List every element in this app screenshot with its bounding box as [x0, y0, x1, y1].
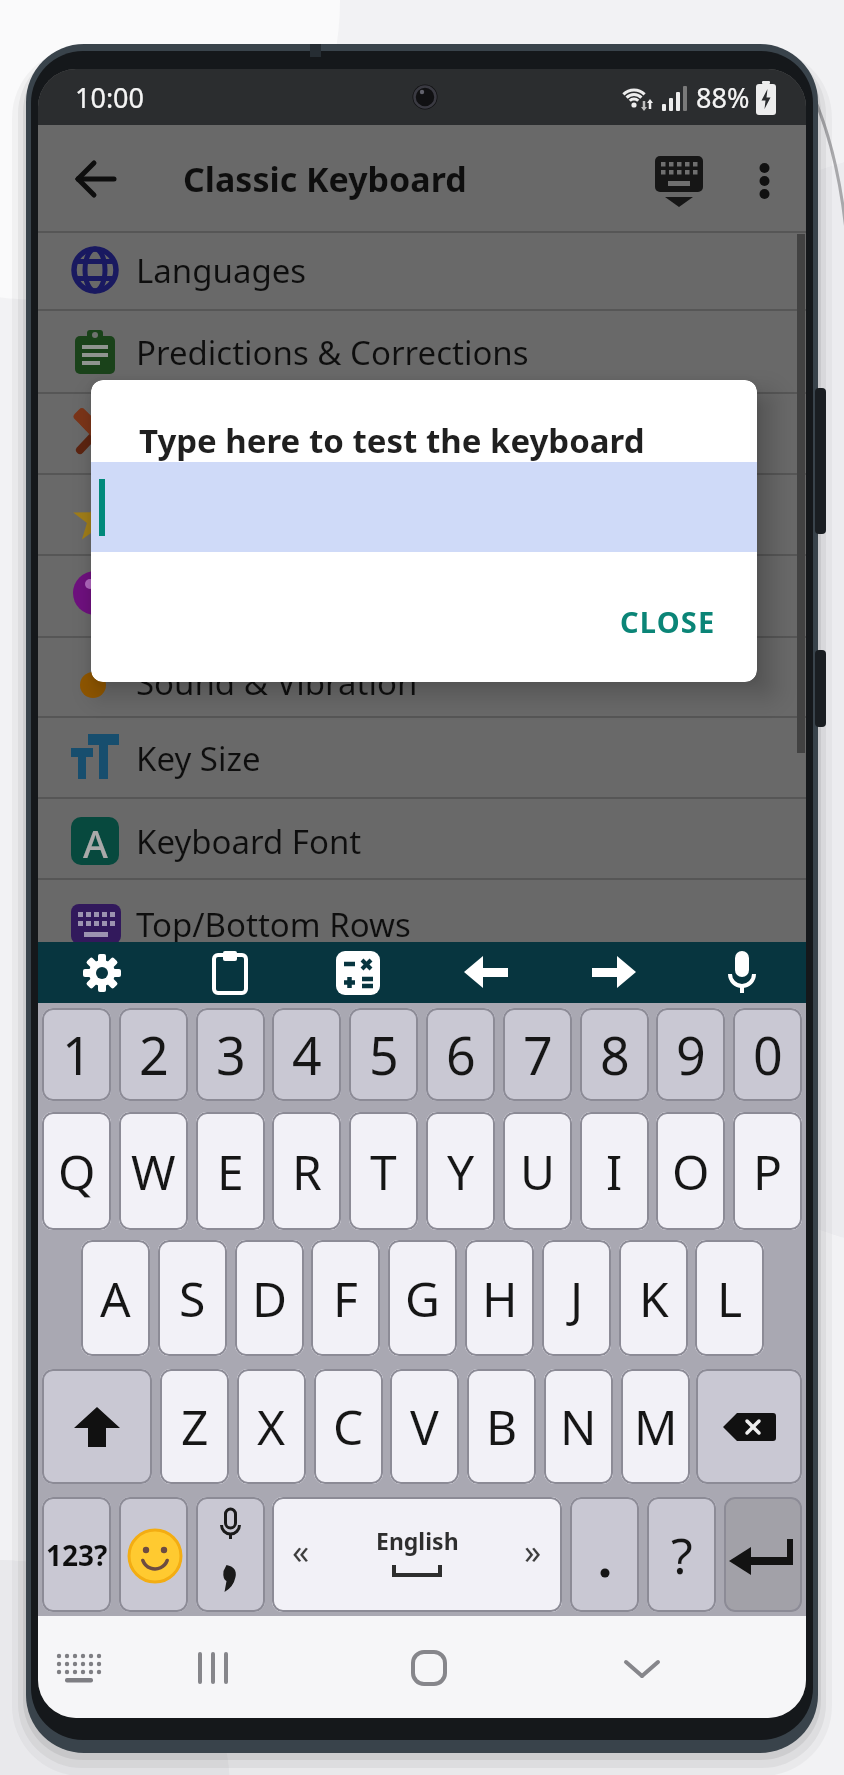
- staticText: K: [639, 1266, 669, 1331]
- staticText: 3: [216, 1019, 246, 1090]
- button[interactable]: [185, 1640, 241, 1696]
- button[interactable]: C: [314, 1369, 383, 1484]
- button[interactable]: [196, 1497, 265, 1612]
- button[interactable]: V: [390, 1369, 459, 1484]
- staticText: V: [410, 1394, 439, 1459]
- button[interactable]: [724, 1497, 802, 1612]
- button[interactable]: [401, 1640, 457, 1696]
- button[interactable]: [38, 942, 166, 1003]
- staticText: «: [292, 1528, 310, 1574]
- button[interactable]: B: [467, 1369, 536, 1484]
- button[interactable]: [614, 1640, 670, 1696]
- staticText: P: [753, 1139, 783, 1204]
- button[interactable]: 0: [733, 1008, 802, 1101]
- button[interactable]: CLOSE: [593, 594, 743, 648]
- button[interactable]: Top/Bottom Rows: [38, 885, 806, 963]
- button[interactable]: 7: [503, 1008, 572, 1101]
- button[interactable]: [294, 942, 422, 1003]
- button[interactable]: [68, 151, 124, 207]
- staticText: M: [634, 1394, 678, 1459]
- button[interactable]: [42, 1369, 152, 1484]
- button[interactable]: 123?: [42, 1497, 111, 1612]
- staticText: I: [606, 1139, 623, 1204]
- staticText: Sound & Vibration: [136, 660, 418, 705]
- button[interactable]: [696, 1369, 802, 1484]
- staticText: 1: [62, 1019, 92, 1090]
- staticText: C: [333, 1394, 364, 1459]
- button[interactable]: [570, 1497, 639, 1612]
- button[interactable]: [38, 394, 806, 472]
- button[interactable]: F: [311, 1240, 380, 1356]
- button[interactable]: Q: [42, 1112, 111, 1230]
- button[interactable]: [38, 554, 806, 632]
- button[interactable]: [738, 141, 790, 221]
- staticText: 0: [753, 1019, 783, 1090]
- staticText: 8: [600, 1019, 630, 1090]
- button[interactable]: L: [695, 1240, 764, 1356]
- button[interactable]: S: [158, 1240, 227, 1356]
- staticText: Type here to test the keyboard: [139, 418, 645, 463]
- button[interactable]: Predictions & Corrections: [38, 313, 806, 391]
- button[interactable]: [51, 1640, 107, 1696]
- button[interactable]: A: [38, 802, 806, 880]
- staticText: N: [560, 1394, 597, 1459]
- button[interactable]: O: [656, 1112, 725, 1230]
- button[interactable]: Languages: [38, 231, 806, 309]
- button[interactable]: Sound & Vibration: [38, 643, 806, 721]
- button[interactable]: [166, 942, 294, 1003]
- button[interactable]: ?: [647, 1497, 716, 1612]
- staticText: Y: [447, 1139, 475, 1204]
- staticText: Z: [181, 1394, 209, 1459]
- button[interactable]: T: [349, 1112, 418, 1230]
- button[interactable]: K: [619, 1240, 688, 1356]
- staticText: T: [370, 1139, 397, 1204]
- button[interactable]: [38, 479, 806, 557]
- staticText: 7: [523, 1019, 553, 1090]
- button[interactable]: X: [237, 1369, 306, 1484]
- button[interactable]: Y: [426, 1112, 495, 1230]
- button[interactable]: R: [272, 1112, 341, 1230]
- button[interactable]: A: [81, 1240, 150, 1356]
- staticText: G: [405, 1266, 440, 1331]
- button[interactable]: E: [196, 1112, 265, 1230]
- staticText: F: [333, 1266, 358, 1331]
- button[interactable]: Z: [160, 1369, 229, 1484]
- staticText: English: [376, 1525, 459, 1556]
- staticText: 88%: [696, 79, 750, 116]
- button[interactable]: 6: [426, 1008, 495, 1101]
- button[interactable]: [91, 462, 757, 552]
- button[interactable]: 3: [196, 1008, 265, 1101]
- button[interactable]: [645, 147, 713, 215]
- staticText: »: [524, 1528, 542, 1574]
- button[interactable]: [119, 1497, 188, 1612]
- button[interactable]: U: [503, 1112, 572, 1230]
- button[interactable]: 8: [580, 1008, 649, 1101]
- staticText: Predictions & Corrections: [136, 330, 529, 375]
- button[interactable]: N: [544, 1369, 613, 1484]
- staticText: Languages: [136, 248, 307, 293]
- button[interactable]: [550, 942, 678, 1003]
- button[interactable]: 1: [42, 1008, 111, 1101]
- button[interactable]: [678, 942, 806, 1003]
- button[interactable]: W: [119, 1112, 188, 1230]
- staticText: Keyboard Font: [136, 819, 362, 864]
- staticText: A: [100, 1266, 131, 1331]
- button[interactable]: I: [580, 1112, 649, 1230]
- button[interactable]: G: [388, 1240, 457, 1356]
- button[interactable]: P: [733, 1112, 802, 1230]
- staticText: 5: [369, 1019, 399, 1090]
- button[interactable]: J: [542, 1240, 611, 1356]
- staticText: U: [520, 1139, 556, 1204]
- button[interactable]: D: [235, 1240, 304, 1356]
- button[interactable]: [422, 942, 550, 1003]
- button[interactable]: 5: [349, 1008, 418, 1101]
- staticText: 2: [139, 1019, 169, 1090]
- staticText: 123?: [46, 1536, 108, 1574]
- button[interactable]: Key Size: [38, 719, 806, 797]
- button[interactable]: 9: [656, 1008, 725, 1101]
- button[interactable]: 4: [272, 1008, 341, 1101]
- button[interactable]: 2: [119, 1008, 188, 1101]
- button[interactable]: H: [465, 1240, 534, 1356]
- button[interactable]: M: [621, 1369, 690, 1484]
- button[interactable]: «: [272, 1497, 562, 1612]
